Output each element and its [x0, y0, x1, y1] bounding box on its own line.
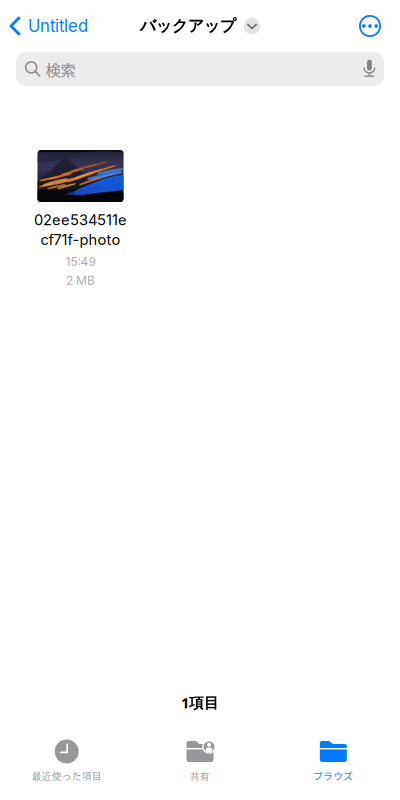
staticText: ブラウズ — [313, 768, 353, 782]
button[interactable]: 02ee534511e — [27, 150, 134, 287]
button[interactable]: ブラウズ — [267, 739, 400, 783]
staticText: cf71f-photo — [40, 231, 120, 248]
staticText: 最近使った項目 — [32, 768, 102, 782]
staticText: 15:49 — [65, 254, 95, 269]
staticText: Untitled — [28, 16, 88, 36]
staticText: 検索 — [45, 58, 75, 80]
button[interactable]: 検索 — [16, 52, 384, 86]
button[interactable]: 共有 — [133, 739, 267, 783]
staticText: 共有 — [190, 768, 210, 782]
staticText: バックアップ — [140, 16, 236, 36]
button[interactable]: Untitled — [0, 8, 88, 44]
staticText: 1項目 — [181, 692, 219, 712]
button[interactable]: 最近使った項目 — [0, 739, 133, 783]
staticText: 02ee534511e — [34, 211, 127, 229]
staticText: 2 MB — [66, 273, 95, 287]
button[interactable]: More — [359, 9, 400, 43]
